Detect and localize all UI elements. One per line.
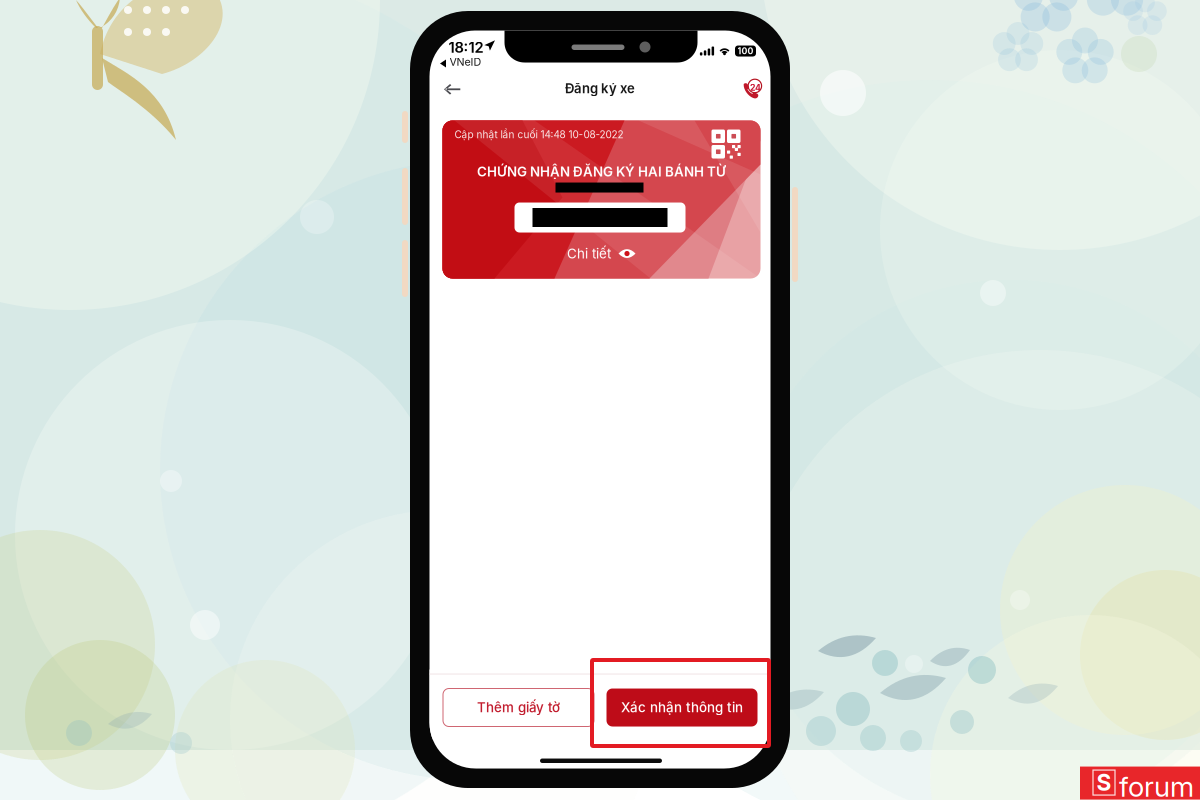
button[interactable]: Xác nhận thông tin — [606, 688, 757, 726]
staticText: 18:12 — [448, 38, 483, 56]
staticText: Xác nhận thông tin — [621, 699, 743, 715]
staticText: 100 — [737, 46, 753, 56]
button[interactable]: Thêm giấy tờ — [443, 688, 594, 726]
staticText: Cập nhật lần cuối 14:48 10-08-2022 — [454, 128, 623, 141]
button[interactable]: Support 24/7 — [731, 68, 773, 110]
staticText: Chi tiết — [567, 245, 611, 262]
staticText: 24 — [750, 82, 761, 93]
staticText: VNeID — [449, 55, 481, 68]
staticText: forum — [1119, 770, 1194, 800]
button[interactable]: Back — [431, 68, 473, 110]
staticText: S — [1096, 769, 1111, 796]
staticText: Thêm giấy tờ — [477, 699, 560, 715]
button[interactable]: Cập nhật lần cuối 14:48 10-08-2022 — [442, 120, 760, 278]
staticText: Đăng ký xe — [565, 81, 635, 96]
staticText: CHỨNG NHẬN ĐĂNG KÝ HAI BÁNH TỪ — [477, 163, 726, 180]
